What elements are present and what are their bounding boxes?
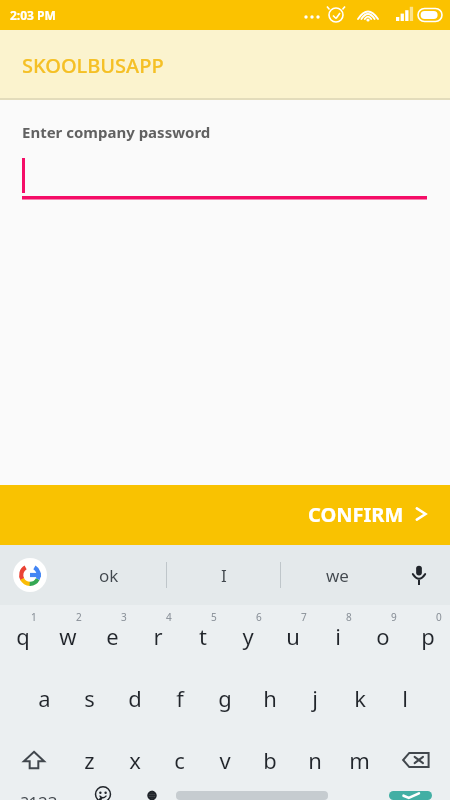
button[interactable]: r	[135, 605, 180, 667]
staticText: k	[354, 683, 366, 713]
button[interactable]: z	[67, 729, 112, 791]
button[interactable]: x	[112, 729, 157, 791]
staticText: 7	[301, 610, 307, 624]
button[interactable]: d	[112, 667, 157, 729]
staticText: w	[59, 621, 77, 651]
button[interactable]: o	[360, 605, 405, 667]
button[interactable]: Emoji	[78, 791, 128, 800]
staticText: i	[335, 621, 341, 651]
staticText: m	[349, 745, 370, 775]
staticText: ?123	[21, 791, 58, 800]
button[interactable]: n	[292, 729, 337, 791]
staticText: y	[242, 621, 254, 651]
staticText: SKOOLBUSAPP	[22, 52, 164, 79]
staticText: n	[308, 745, 322, 775]
button[interactable]: e	[90, 605, 135, 667]
button[interactable]: y	[225, 605, 270, 667]
staticText: b	[263, 745, 277, 775]
staticText: r	[153, 621, 163, 651]
button[interactable]: c	[157, 729, 202, 791]
button[interactable]: m	[337, 729, 382, 791]
staticText: x	[129, 745, 141, 775]
button[interactable]: ?123	[0, 791, 78, 800]
staticText: q	[16, 621, 30, 651]
button[interactable]: ok	[52, 545, 166, 605]
staticText: 8	[346, 610, 352, 624]
staticText: 0	[436, 610, 442, 624]
staticText: 9	[391, 610, 397, 624]
button[interactable]: f	[157, 667, 202, 729]
staticText: CONFIRM	[308, 501, 404, 528]
staticText: t	[199, 621, 207, 651]
staticText: o	[376, 621, 390, 651]
button[interactable]: I	[167, 545, 280, 605]
staticText: h	[263, 683, 277, 713]
button[interactable]: v	[202, 729, 247, 791]
staticText: 2:03 PM	[10, 7, 56, 23]
button[interactable]: k	[337, 667, 382, 729]
button[interactable]: s	[67, 667, 112, 729]
staticText: we	[326, 564, 349, 587]
button[interactable]: Google	[13, 558, 47, 592]
staticText: 5	[211, 610, 217, 624]
staticText: 6	[256, 610, 262, 624]
button[interactable]: t	[180, 605, 225, 667]
button[interactable]: we	[281, 545, 394, 605]
button[interactable]: Change language	[128, 791, 176, 800]
button[interactable]: w	[45, 605, 90, 667]
button[interactable]: h	[247, 667, 292, 729]
staticText: v	[219, 745, 231, 775]
button[interactable]: Shift	[0, 729, 67, 791]
staticText: a	[38, 683, 51, 713]
button[interactable]: g	[202, 667, 247, 729]
button[interactable]: u	[270, 605, 315, 667]
staticText: g	[218, 683, 232, 713]
button[interactable]: Voice input	[402, 558, 436, 592]
button[interactable]: p	[405, 605, 450, 667]
staticText: 1	[31, 610, 37, 624]
staticText: p	[421, 621, 435, 651]
staticText: s	[84, 683, 95, 713]
button[interactable]: CONFIRM	[0, 485, 450, 543]
staticText: j	[312, 683, 318, 713]
staticText: f	[176, 683, 184, 713]
staticText: ok	[99, 564, 119, 587]
staticText: d	[128, 683, 142, 713]
button[interactable]: Backspace	[382, 729, 450, 791]
staticText: z	[84, 745, 95, 775]
staticText: 3	[121, 610, 127, 624]
staticText: I	[221, 564, 227, 587]
button[interactable]: a	[22, 667, 67, 729]
button[interactable]: i	[315, 605, 360, 667]
button[interactable]: l	[382, 667, 427, 729]
staticText: 2	[76, 610, 82, 624]
staticText: u	[286, 621, 300, 651]
staticText: 4	[166, 610, 172, 624]
staticText: c	[174, 745, 185, 775]
button[interactable]: Enter	[389, 791, 432, 800]
staticText: e	[106, 621, 119, 651]
button[interactable]: q	[0, 605, 45, 667]
button[interactable]: j	[292, 667, 337, 729]
button[interactable]: b	[247, 729, 292, 791]
staticText: Enter company password	[22, 122, 211, 142]
staticText: l	[402, 683, 408, 713]
